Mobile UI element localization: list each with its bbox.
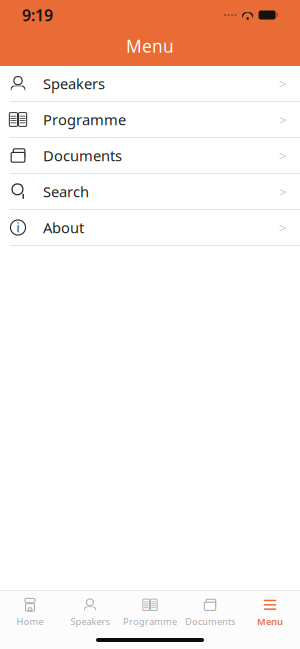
button[interactable]: Documents xyxy=(180,590,240,632)
staticText: Programme xyxy=(43,110,126,129)
staticText: Documents xyxy=(185,615,235,628)
staticText: > xyxy=(279,111,287,128)
staticText: Home xyxy=(16,615,43,628)
button[interactable]: Programme xyxy=(120,590,180,632)
staticText: Menu xyxy=(257,615,283,628)
staticText: Menu xyxy=(126,34,174,57)
button[interactable]: Documents xyxy=(0,138,300,174)
button[interactable]: Menu xyxy=(240,590,300,632)
button[interactable]: Programme xyxy=(0,102,300,138)
staticText: About xyxy=(43,218,84,237)
staticText: > xyxy=(279,219,287,236)
staticText: i xyxy=(16,219,19,235)
button[interactable]: i xyxy=(0,210,300,246)
button[interactable]: Search xyxy=(0,174,300,210)
staticText: Programme xyxy=(123,615,177,628)
staticText: Speakers xyxy=(43,74,105,93)
staticText: > xyxy=(279,75,287,92)
staticText: > xyxy=(279,183,287,200)
button[interactable]: Home xyxy=(0,590,60,632)
staticText: Search xyxy=(43,182,89,201)
staticText: 9:19 xyxy=(22,4,53,26)
button[interactable]: Speakers xyxy=(60,590,120,632)
staticText: > xyxy=(279,147,287,164)
staticText: Documents xyxy=(43,146,122,165)
staticText: Speakers xyxy=(70,615,109,628)
button[interactable]: Speakers xyxy=(0,66,300,102)
